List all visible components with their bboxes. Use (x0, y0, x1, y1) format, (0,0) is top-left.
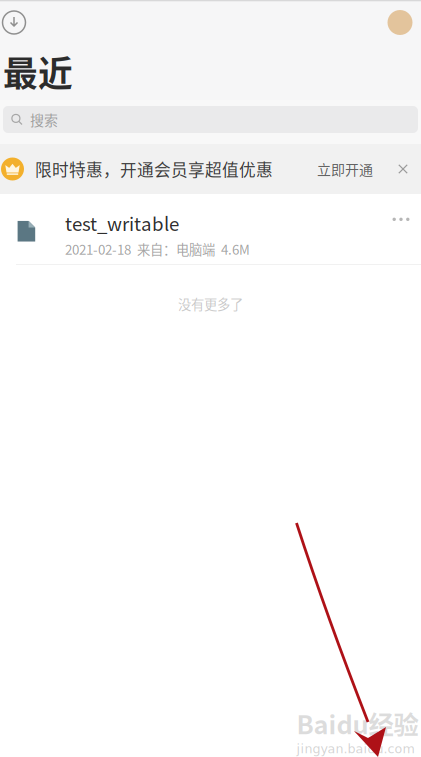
button[interactable]: test_writable (0, 194, 421, 264)
button[interactable]: 搜索 (3, 106, 418, 133)
staticText: jingyan.baidu.com (296, 741, 414, 756)
button[interactable]: 立即开通 (314, 157, 376, 181)
staticText: 没有更多了 (178, 294, 243, 313)
button[interactable]: More options (381, 199, 421, 239)
staticText: test_writable (65, 209, 179, 236)
staticText: 最近 (3, 46, 73, 97)
button[interactable]: Profile (385, 6, 415, 38)
staticText: 限时特惠，开通会员享超值优惠 (35, 157, 273, 181)
staticText: 2021-02-18 来自：电脑端 4.6M (65, 239, 250, 259)
staticText: 立即开通 (317, 159, 373, 179)
button[interactable]: Close banner (392, 158, 414, 180)
staticText: 搜索 (30, 109, 58, 130)
staticText: Baidu经验 (296, 705, 418, 741)
button[interactable]: Transfer list (0, 6, 28, 38)
